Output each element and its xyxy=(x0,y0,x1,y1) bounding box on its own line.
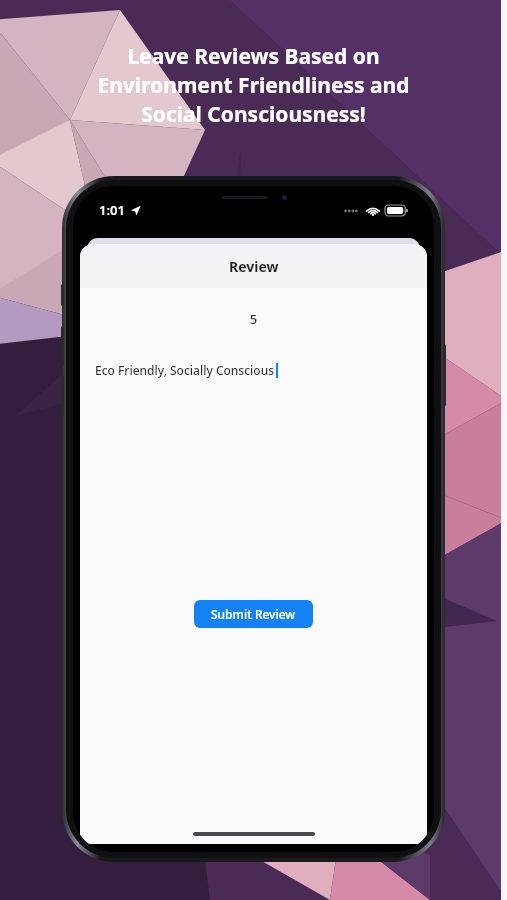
staticText: 5 xyxy=(80,310,427,328)
staticText: Environment Friendliness and xyxy=(97,71,410,100)
staticText: Social Consciousness! xyxy=(141,100,366,129)
staticText: Submit Review xyxy=(211,606,296,622)
button[interactable]: Submit Review xyxy=(194,600,313,628)
staticText: 1:01 xyxy=(99,201,125,219)
staticText: Leave Reviews Based on xyxy=(127,42,380,71)
staticText: Review xyxy=(229,257,279,276)
button[interactable]: Eco Friendly, Socially Conscious xyxy=(95,362,427,378)
staticText: Eco Friendly, Socially Conscious xyxy=(95,362,275,378)
